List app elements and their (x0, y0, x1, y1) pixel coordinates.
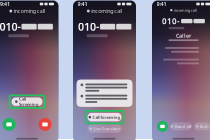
button[interactable]: Call Screening (87, 113, 121, 121)
staticText: 9:41 (77, 0, 87, 8)
staticText: 010- (0, 20, 20, 34)
staticText: incoming call (174, 7, 197, 13)
staticText: Live Translate (93, 126, 119, 131)
staticText: Hand off (174, 124, 191, 129)
staticText: incoming call (14, 7, 45, 15)
staticText: Call Screening (19, 96, 39, 107)
button[interactable]: Call Screening (11, 97, 42, 106)
button[interactable]: Decline (38, 118, 51, 131)
button[interactable]: Accept (2, 118, 15, 131)
button[interactable]: Hand off (170, 122, 191, 130)
staticText: 010- (162, 16, 180, 26)
staticText: Caller (176, 32, 191, 39)
button[interactable]: Live Translate (87, 124, 121, 133)
staticText: 010- (78, 20, 99, 34)
button[interactable]: Accept (157, 121, 168, 132)
staticText: End (200, 124, 208, 129)
staticText: Call Screening (92, 114, 120, 120)
staticText: 9:41 (0, 0, 10, 8)
staticText: 9:41 (156, 0, 166, 8)
button[interactable]: End (194, 122, 210, 130)
staticText: incoming call (91, 7, 122, 15)
